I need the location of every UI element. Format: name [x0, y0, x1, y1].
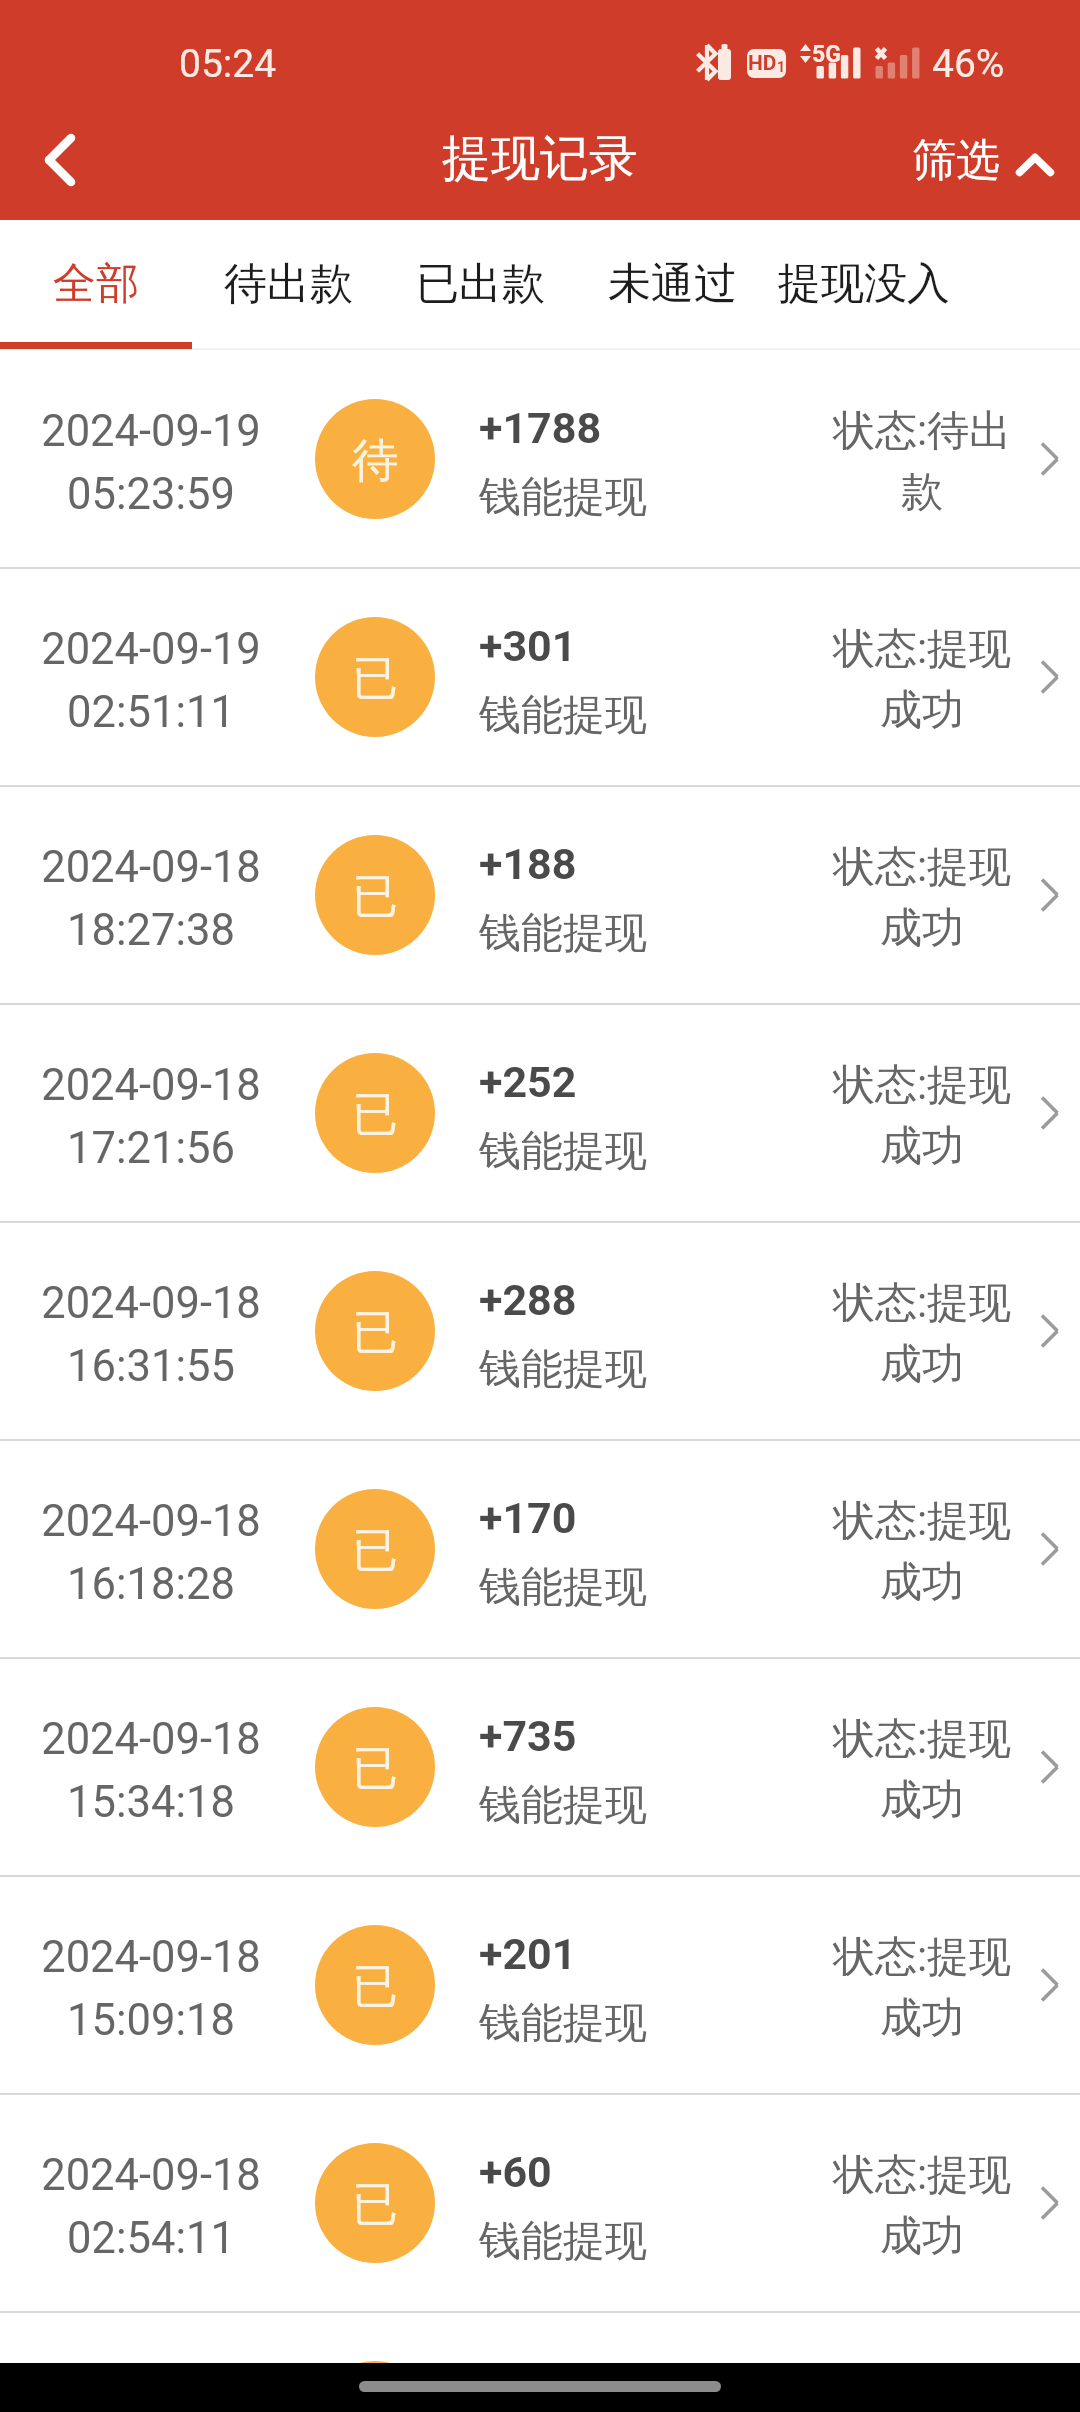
- staticText: 17:21:56: [31, 1123, 271, 1174]
- staticText: 状态:提现: [832, 2149, 1012, 2202]
- staticText: 已: [352, 1740, 398, 1798]
- staticText: 筛选: [912, 133, 1000, 188]
- staticText: +301: [479, 621, 577, 671]
- staticText: 成功: [832, 1774, 1012, 1827]
- staticText: 已: [352, 868, 398, 926]
- button[interactable]: 2024-09-18: [0, 1659, 1080, 1875]
- staticText: 已: [352, 1086, 398, 1144]
- staticText: +1788: [479, 403, 602, 453]
- button[interactable]: 2024-09-18: [0, 1005, 1080, 1221]
- staticText: 钱能提现: [479, 1997, 647, 2050]
- staticText: 05:24: [179, 41, 277, 87]
- staticText: 46%: [932, 41, 1005, 87]
- button[interactable]: 2024-09-19: [0, 569, 1080, 785]
- staticText: 1: [777, 59, 786, 75]
- staticText: 钱能提现: [479, 471, 647, 524]
- staticText: 2024-09-18: [31, 1060, 271, 1111]
- staticText: 02:51:11: [31, 687, 271, 738]
- staticText: 成功: [832, 902, 1012, 955]
- staticText: 状态:提现: [832, 1931, 1012, 1984]
- staticText: 状态:提现: [832, 1713, 1012, 1766]
- button[interactable]: 2024-09-19: [0, 351, 1080, 567]
- staticText: +735: [479, 1711, 577, 1761]
- staticText: 状态:待出: [832, 405, 1012, 458]
- button[interactable]: 2024-09-18: [0, 1223, 1080, 1439]
- staticText: 钱能提现: [479, 1779, 647, 1832]
- staticText: 款: [832, 466, 1012, 519]
- button[interactable]: 2024-09-18: [0, 1441, 1080, 1657]
- staticText: 提现没入: [778, 257, 950, 311]
- button[interactable]: 2024-09-18: [0, 1877, 1080, 2093]
- staticText: 2024-09-19: [31, 406, 271, 457]
- staticText: 状态:提现: [832, 841, 1012, 894]
- staticText: 5G: [812, 41, 841, 68]
- staticText: 状态:提现: [832, 1277, 1012, 1330]
- staticText: 钱能提现: [479, 1125, 647, 1178]
- staticText: 成功: [832, 1556, 1012, 1609]
- staticText: 已出款: [416, 257, 545, 311]
- staticText: +288: [479, 1275, 577, 1325]
- button[interactable]: 待出款: [192, 220, 384, 342]
- staticText: 16:31:55: [31, 1341, 271, 1392]
- staticText: HD: [748, 51, 777, 76]
- staticText: 钱能提现: [479, 1561, 647, 1614]
- staticText: 钱能提现: [479, 1343, 647, 1396]
- button[interactable]: Back: [5, 105, 115, 215]
- staticText: 状态:提现: [832, 1059, 1012, 1112]
- staticText: 2024-09-18: [31, 1932, 271, 1983]
- staticText: 未通过: [608, 257, 737, 311]
- button[interactable]: 未通过: [576, 220, 768, 342]
- button[interactable]: 2024-09-18: [0, 2313, 1080, 2363]
- staticText: 已: [352, 1958, 398, 2016]
- button[interactable]: 全部: [0, 220, 192, 342]
- staticText: 状态:提现: [832, 623, 1012, 676]
- staticText: 待: [352, 432, 398, 490]
- staticText: 16:18:28: [31, 1559, 271, 1610]
- staticText: 2024-09-18: [31, 1496, 271, 1547]
- staticText: 已: [352, 1522, 398, 1580]
- staticText: 05:23:59: [31, 469, 271, 520]
- staticText: 成功: [832, 684, 1012, 737]
- staticText: 钱能提现: [479, 2215, 647, 2268]
- staticText: 已: [352, 650, 398, 708]
- staticText: 全部: [53, 257, 139, 311]
- button[interactable]: 2024-09-18: [0, 2095, 1080, 2311]
- staticText: 成功: [832, 1338, 1012, 1391]
- staticText: 2024-09-18: [31, 2150, 271, 2201]
- button[interactable]: 2024-09-18: [0, 787, 1080, 1003]
- staticText: +252: [479, 1057, 577, 1107]
- staticText: 02:54:11: [31, 2213, 271, 2264]
- staticText: +188: [479, 839, 577, 889]
- staticText: 已: [352, 1304, 398, 1362]
- staticText: 钱能提现: [479, 689, 647, 742]
- button[interactable]: 提现没入: [768, 220, 960, 342]
- staticText: 成功: [832, 1992, 1012, 2045]
- staticText: 钱能提现: [479, 907, 647, 960]
- staticText: 已: [352, 2176, 398, 2234]
- button[interactable]: 筛选: [906, 110, 1054, 220]
- staticText: 15:09:18: [31, 1995, 271, 2046]
- staticText: +60: [479, 2147, 552, 2197]
- staticText: 成功: [832, 1120, 1012, 1173]
- staticText: 2024-09-18: [31, 1714, 271, 1765]
- staticText: 成功: [832, 2210, 1012, 2263]
- staticText: 2024-09-18: [31, 1278, 271, 1329]
- button[interactable]: 已出款: [384, 220, 576, 342]
- staticText: 15:34:18: [31, 1777, 271, 1828]
- staticText: 待出款: [224, 257, 353, 311]
- staticText: +201: [479, 1929, 577, 1979]
- staticText: 2024-09-18: [31, 842, 271, 893]
- staticText: 状态:提现: [832, 1495, 1012, 1548]
- staticText: 18:27:38: [31, 905, 271, 956]
- staticText: 2024-09-19: [31, 624, 271, 675]
- staticText: +170: [479, 1493, 577, 1543]
- staticText: 提现记录: [442, 128, 638, 190]
